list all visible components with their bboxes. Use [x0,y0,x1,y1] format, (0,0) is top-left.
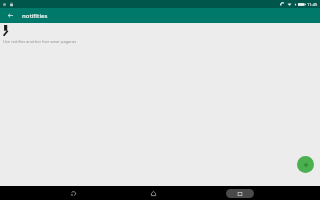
button[interactable]: Back [66,186,80,200]
button[interactable]: Recent apps [226,189,254,198]
staticText: 11:45 [307,2,318,7]
staticText: Use notifies another free wear pagaras [3,39,77,44]
button[interactable]: Add [297,156,314,173]
staticText: notifities [22,12,48,20]
button[interactable]: Navigate up [5,10,16,21]
button[interactable]: Home [146,186,160,200]
